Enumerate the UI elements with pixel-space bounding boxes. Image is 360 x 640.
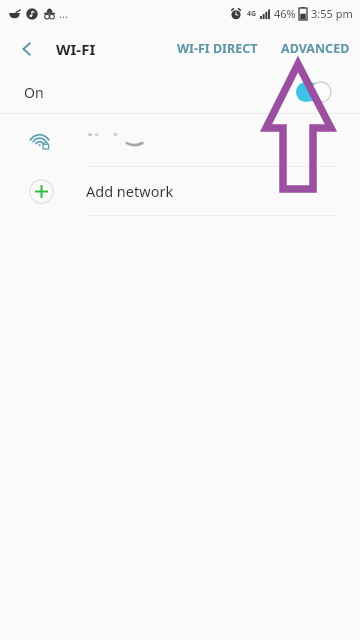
button[interactable]: Add network [0, 167, 360, 215]
staticText: 3:55 pm [311, 6, 353, 21]
staticText: WI-FI [56, 39, 96, 59]
button[interactable]: ADVANCED [275, 34, 356, 63]
button[interactable]: WI-FI DIRECT [171, 34, 264, 63]
staticText: 46% [274, 6, 296, 21]
staticText: 4G [247, 9, 257, 19]
staticText: Add network [86, 181, 174, 201]
staticText: ... [59, 6, 68, 21]
staticText: ADVANCED [281, 40, 350, 57]
button[interactable]: On [0, 71, 360, 113]
staticText: WI-FI DIRECT [177, 40, 258, 57]
staticText: On [24, 83, 44, 102]
button[interactable]: Back [14, 36, 40, 62]
button[interactable] [0, 114, 360, 166]
